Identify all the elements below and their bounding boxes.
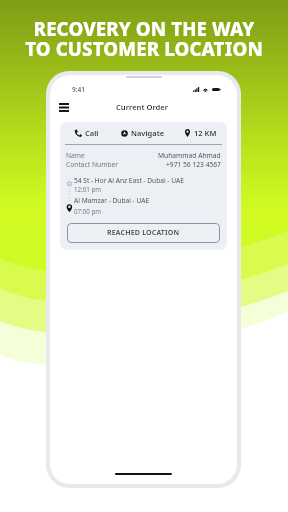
staticText: Muhammad Ahmad [158,151,221,160]
staticText: +971 56 123 4567 [166,160,221,169]
staticText: REACHED LOCATION [107,228,180,238]
button[interactable]: Menu [54,96,74,118]
button[interactable]: 12 KM [173,122,227,144]
button[interactable]: Call [60,122,113,144]
staticText: Call [85,128,99,138]
staticText: 12 KM [194,128,217,138]
staticText: Current Order [116,102,169,112]
button[interactable]: REACHED LOCATION [67,223,220,243]
staticText: RECOVERY ON THE WAY TO CUSTOMER LOCATION [0,16,288,61]
staticText: 54 St - Hor Al Anz East - Dubai - UAE [74,176,184,185]
button[interactable]: Navigate [113,122,173,144]
staticText: Name [66,151,85,160]
staticText: Al Mamzar - Dubai - UAE [74,196,150,205]
staticText: Navigate [131,128,165,138]
staticText: Contact Number [66,160,119,169]
staticText: 07:00 pm [74,207,102,215]
staticText: 12:01 pm [74,185,102,193]
staticText: 9:41 [72,85,85,94]
